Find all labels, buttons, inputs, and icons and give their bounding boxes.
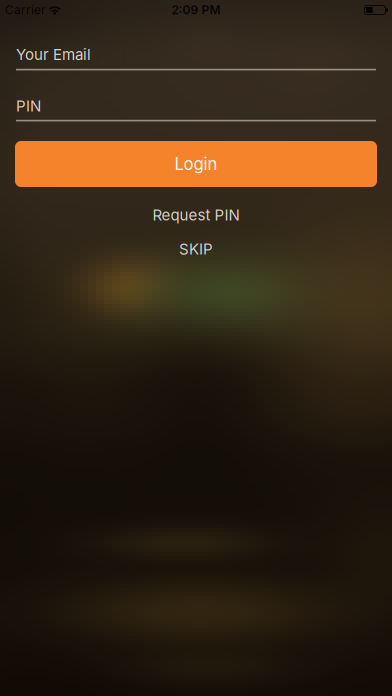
staticText: 2:09 PM xyxy=(171,3,220,17)
button[interactable]: Request PIN xyxy=(144,202,247,228)
staticText: PIN xyxy=(16,91,55,121)
button[interactable]: SKIP xyxy=(171,236,221,262)
button[interactable]: Login xyxy=(15,141,377,187)
staticText: PIN xyxy=(16,97,41,115)
staticText: Your Email xyxy=(16,39,130,69)
textField[interactable]: Your Email xyxy=(16,39,376,69)
staticText: Login xyxy=(174,154,217,174)
staticText: Your Email xyxy=(16,45,91,64)
textField[interactable]: PIN xyxy=(16,91,376,121)
staticText: SKIP xyxy=(179,240,213,258)
staticText: Request PIN xyxy=(152,206,239,224)
staticText: Carrier xyxy=(5,3,46,17)
